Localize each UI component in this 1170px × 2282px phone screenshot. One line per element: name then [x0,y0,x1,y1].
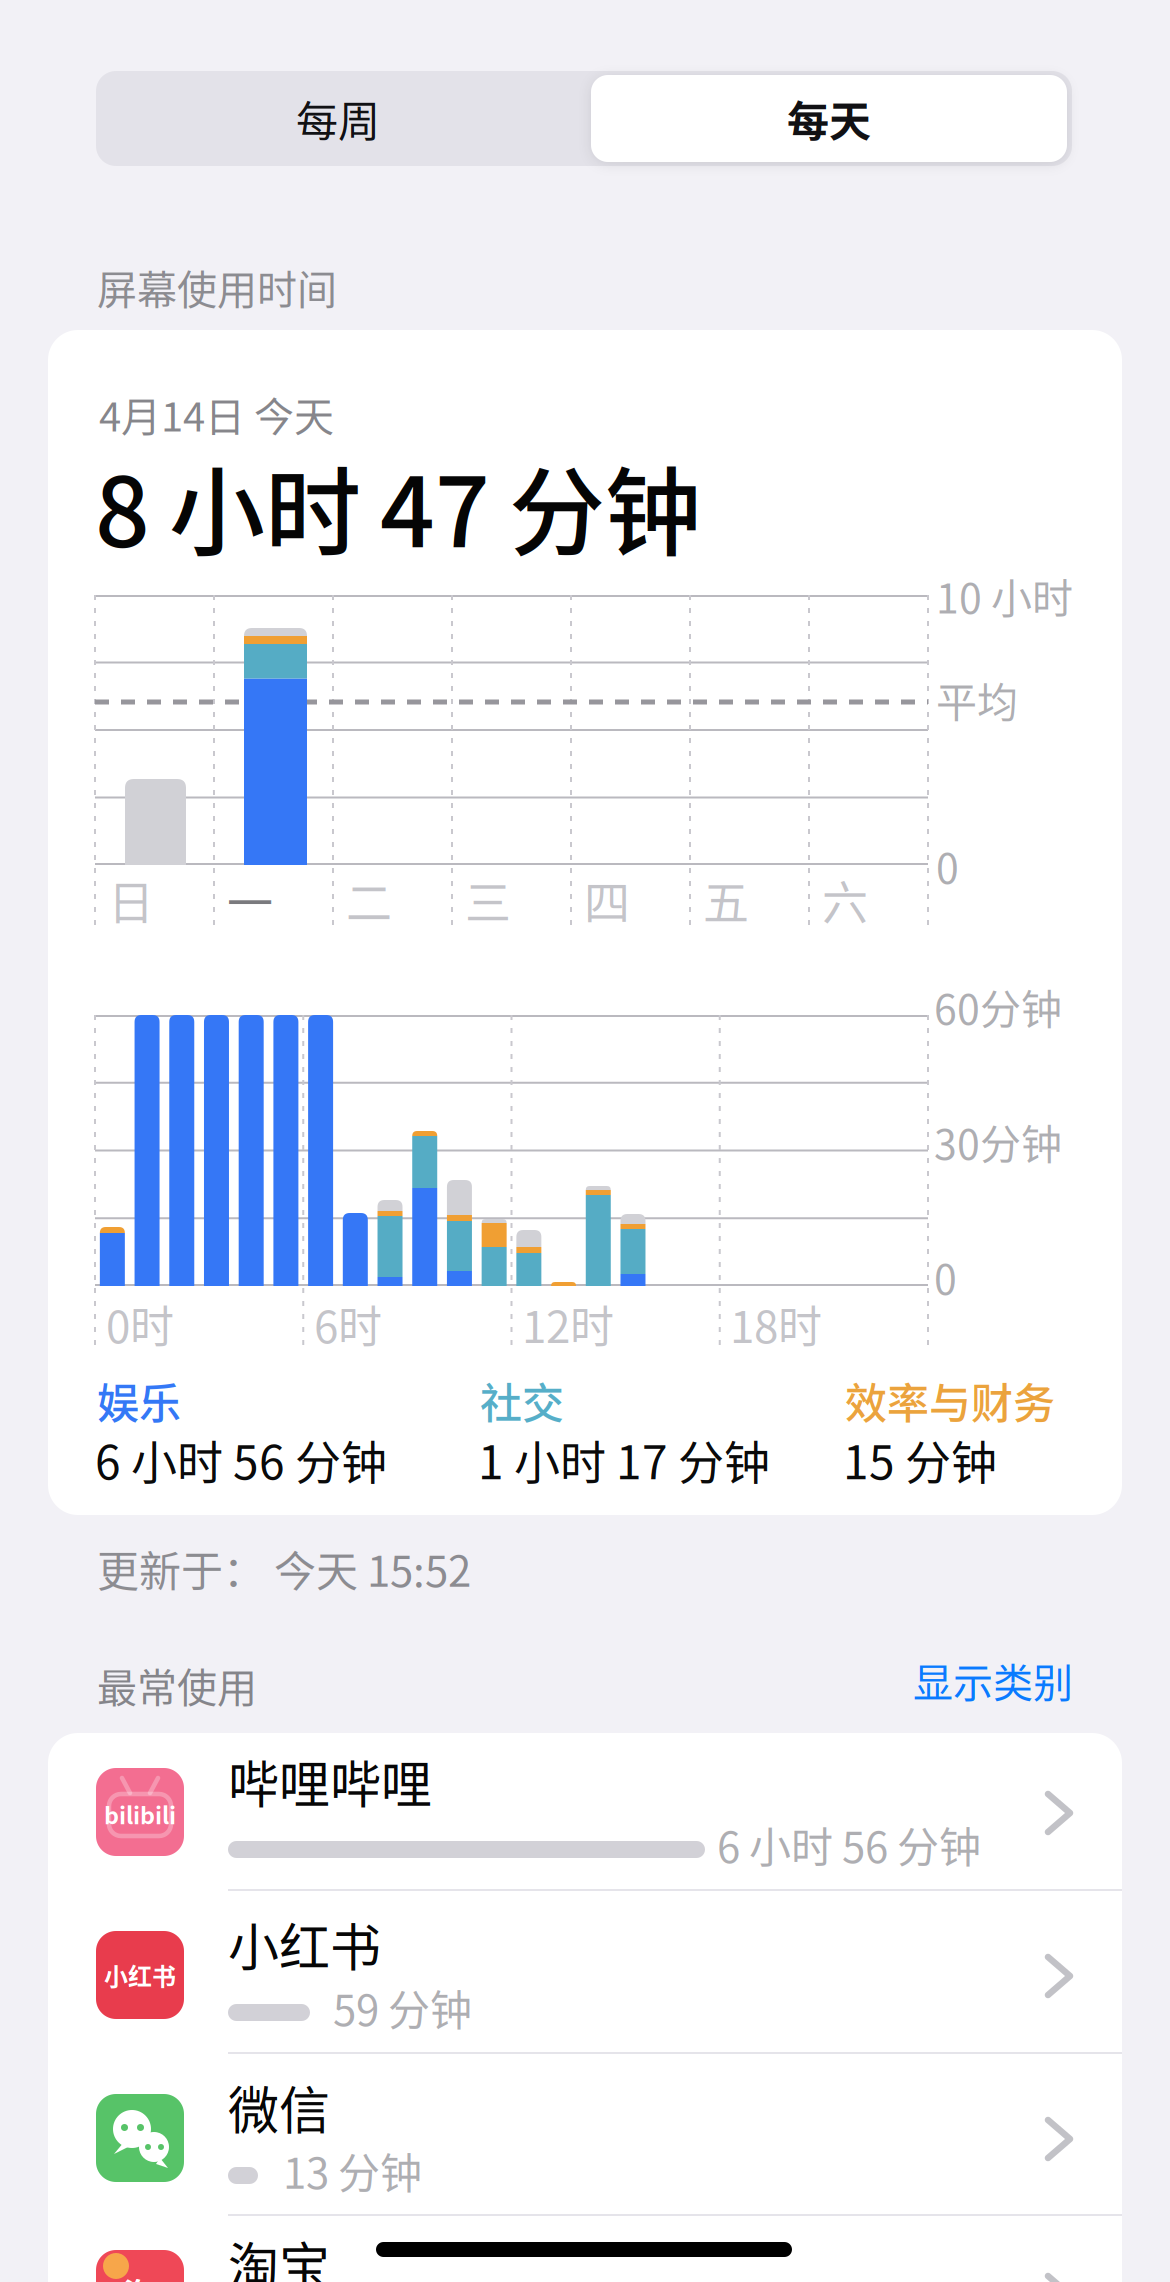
staticText: 12时 [522,1292,614,1356]
staticText: 13 分钟 [283,2140,422,2201]
staticText: 三 [465,866,511,933]
staticText: 6 小时 56 分钟 [717,1814,981,1875]
staticText: 每周 [296,88,380,149]
staticText: 60分钟 [934,977,1062,1036]
staticText: 18时 [730,1292,822,1356]
staticText: 显示类别 [913,1651,1073,1709]
staticText: 效率与财务 [845,1370,1055,1431]
staticText: 一 [227,866,273,933]
staticText: 四 [584,866,630,933]
staticText: 哔哩哔哩 [228,1744,432,1818]
button[interactable]: 每天 [591,75,1067,162]
staticText: 淘宝 [228,2226,330,2282]
staticText: 平均 [936,670,1018,729]
staticText: 小红书 [104,1958,176,1992]
staticText: 0 [934,1247,957,1306]
staticText: 15 分钟 [843,1426,997,1493]
staticText: 屏幕使用时间 [97,258,337,316]
staticText: 二 [346,866,392,933]
staticText: bilibili [104,1797,176,1831]
staticText: 日 [108,866,154,933]
staticText: 0 [936,836,959,895]
button[interactable]: bilibili [48,1768,1122,1923]
staticText: 五 [703,866,749,933]
staticText: 1 小时 17 分钟 [478,1426,770,1493]
staticText: 30分钟 [934,1112,1062,1171]
button[interactable]: 淘 [48,2250,1122,2282]
staticText: 淘 [122,2269,157,2282]
staticText: 4月14日 今天 [99,385,334,443]
staticText: 59 分钟 [333,1977,472,2038]
button[interactable]: 显示类别 [97,1650,1073,1710]
button[interactable]: 小红书 [48,1931,1122,2086]
staticText: 小红书 [228,1907,381,1981]
button[interactable]: 微信 [48,2094,1122,2249]
staticText: 6 小时 56 分钟 [95,1426,387,1493]
staticText: 8 小时 47 分钟 [95,436,701,575]
staticText: 每天 [787,88,871,149]
button[interactable]: 每周 [96,71,580,166]
staticText: 娱乐 [97,1370,181,1431]
staticText: 最常使用 [97,1656,257,1714]
staticText: 六 [822,866,868,933]
staticText: 6时 [314,1292,382,1356]
staticText: 微信 [228,2070,330,2144]
staticText: 更新于： 今天 15:52 [97,1538,471,1599]
staticText: 10 小时 [936,566,1073,625]
staticText: 0时 [106,1292,174,1356]
staticText: 社交 [480,1370,564,1431]
